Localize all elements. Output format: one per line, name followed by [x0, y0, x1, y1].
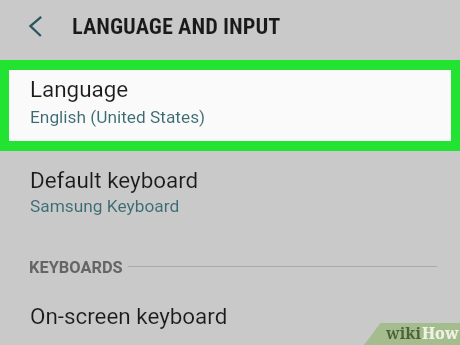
button[interactable]: On-screen keyboard	[0, 294, 460, 339]
staticText: Samsung Keyboard	[30, 196, 180, 216]
button[interactable]: Language	[9, 70, 451, 141]
staticText: On-screen keyboard	[30, 303, 228, 329]
staticText: How	[422, 322, 459, 344]
staticText: wiki	[386, 322, 422, 344]
staticText: KEYBOARDS	[29, 258, 123, 277]
button[interactable]: Default keyboard	[0, 157, 460, 222]
staticText: English (United States)	[30, 107, 206, 127]
button[interactable]: Navigate up	[20, 13, 46, 39]
staticText: Language	[30, 76, 129, 102]
staticText: LANGUAGE AND INPUT	[72, 13, 281, 39]
staticText: Default keyboard	[30, 167, 199, 193]
